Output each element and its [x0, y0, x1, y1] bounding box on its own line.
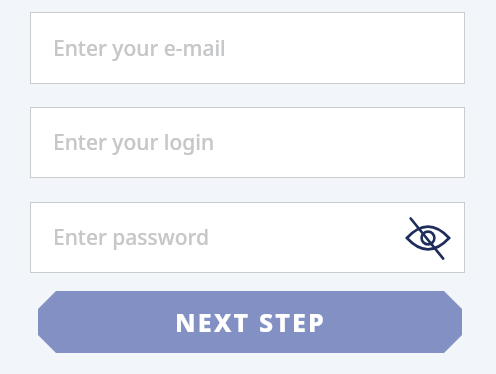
button[interactable]: NEXT STEP — [38, 291, 462, 353]
staticText: Enter password — [53, 223, 210, 252]
button[interactable]: Enter password — [30, 202, 465, 273]
staticText: Enter your e-mail — [53, 34, 226, 63]
button[interactable]: Hide password — [405, 215, 451, 261]
button[interactable]: Enter your e-mail — [30, 12, 465, 84]
staticText: Enter your login — [53, 128, 215, 157]
button[interactable]: Enter your login — [30, 107, 465, 178]
staticText: NEXT STEP — [175, 305, 326, 339]
